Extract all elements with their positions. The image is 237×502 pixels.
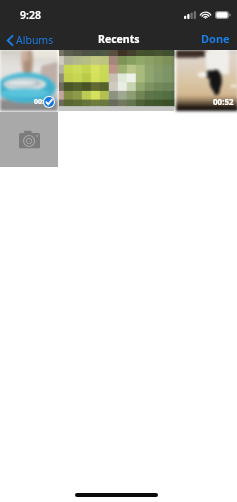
- button[interactable]: Done: [201, 31, 237, 46]
- button[interactable]: Video 00:52: [176, 50, 237, 111]
- staticText: 00:52: [213, 96, 234, 107]
- button[interactable]: Photo 1: [0, 50, 58, 111]
- staticText: Recents: [98, 32, 140, 46]
- button[interactable]: Albums: [0, 33, 60, 47]
- other: Selected: [43, 96, 55, 108]
- staticText: 00:: [34, 97, 44, 107]
- staticText: 9:28: [20, 8, 41, 22]
- button[interactable]: Photo placeholder: [0, 112, 58, 167]
- button[interactable]: Photo 2: [59, 50, 174, 111]
- staticText: Albums: [16, 33, 54, 47]
